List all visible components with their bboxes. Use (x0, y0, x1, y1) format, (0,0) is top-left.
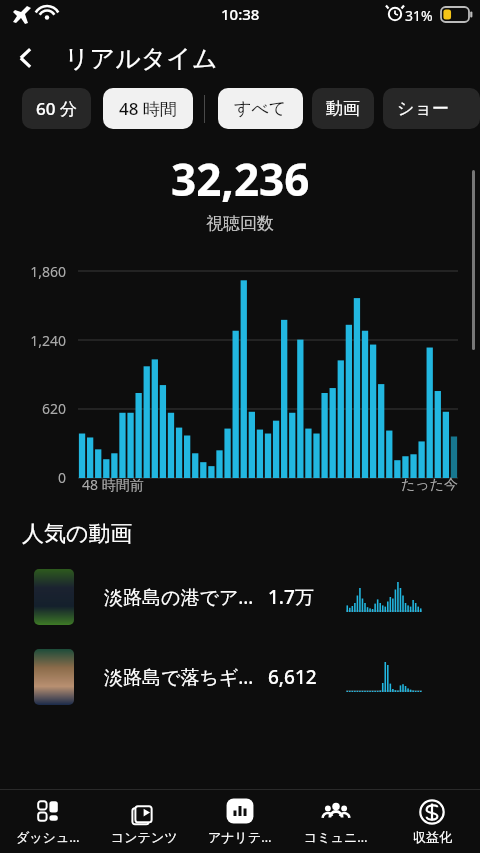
staticText: コミュニ… (304, 828, 368, 846)
staticText: 人気の動画 (22, 520, 133, 548)
staticText: 0 (57, 468, 66, 487)
staticText: 淡路島で落ちギ… (104, 664, 264, 690)
button[interactable]: 動画 (312, 88, 374, 129)
staticText: リアルタイム (64, 43, 218, 74)
staticText: 1,860 (30, 262, 66, 281)
button[interactable]: 48 時間 (103, 88, 193, 129)
button[interactable]: Back (0, 32, 52, 84)
button[interactable]: アナリテ… (192, 790, 288, 853)
staticText: 48 時間前 (82, 475, 144, 494)
staticText: 1.7万 (268, 584, 340, 610)
button[interactable]: すべて (218, 88, 303, 129)
staticText: 6,612 (268, 664, 340, 690)
button[interactable]: 淡路島で落ちギ… (0, 648, 480, 706)
staticText: すべて (234, 98, 287, 119)
staticText: 1,240 (30, 331, 66, 350)
staticText: 31% (405, 6, 433, 25)
staticText: 620 (41, 399, 66, 418)
staticText: 収益化 (413, 829, 452, 845)
staticText: ショート (397, 98, 466, 119)
staticText: アナリテ… (208, 828, 272, 846)
button[interactable]: 60 分 (22, 88, 91, 129)
button[interactable]: ダッシュ… (0, 790, 96, 853)
staticText: 48 時間 (119, 97, 177, 120)
button[interactable]: ショート (383, 88, 480, 129)
staticText: ダッシュ… (16, 828, 80, 846)
staticText: たった今 (401, 476, 458, 494)
staticText: コンテンツ (111, 829, 178, 845)
button[interactable]: コンテンツ (96, 790, 192, 853)
button[interactable]: 収益化 (384, 790, 480, 853)
staticText: 動画 (326, 98, 360, 119)
button[interactable]: コミュニ… (288, 790, 384, 853)
staticText: 32,236 (171, 149, 310, 209)
staticText: 60 分 (36, 97, 77, 120)
staticText: 10:38 (221, 4, 260, 24)
staticText: 視聴回数 (206, 213, 274, 234)
staticText: 淡路島の港でア… (104, 584, 264, 610)
button[interactable]: 淡路島の港でア… (0, 568, 480, 626)
